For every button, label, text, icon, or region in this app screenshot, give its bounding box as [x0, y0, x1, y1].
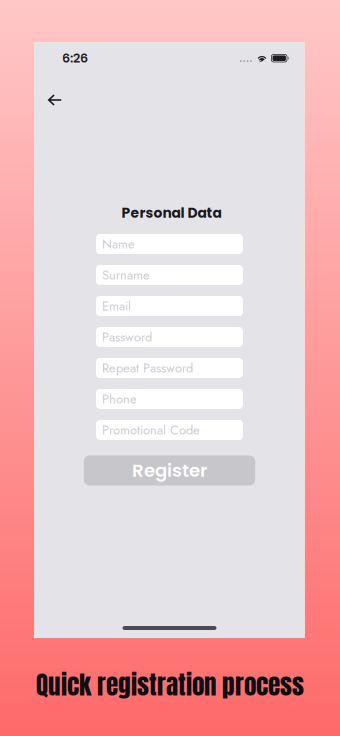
staticText: Email — [102, 297, 131, 315]
staticText: Promotional Code — [102, 421, 200, 439]
button[interactable]: Promotional Code — [96, 420, 243, 440]
staticText: Register — [132, 458, 207, 483]
button[interactable]: Register — [84, 455, 255, 485]
staticText: Password — [102, 328, 152, 346]
staticText: Personal Data — [121, 203, 221, 223]
button[interactable]: Repeat Password — [96, 358, 243, 378]
staticText: Name — [102, 235, 135, 253]
staticText: Surname — [102, 266, 150, 284]
button[interactable]: Surname — [96, 265, 243, 285]
button[interactable]: Password — [96, 327, 243, 347]
button[interactable]: Back — [39, 85, 71, 115]
button[interactable]: Email — [96, 296, 243, 316]
staticText: Phone — [102, 390, 137, 408]
staticText: Repeat Password — [102, 359, 193, 377]
staticText: 6:26 — [62, 49, 88, 67]
staticText: Quick registration process — [36, 666, 304, 704]
button[interactable]: Name — [96, 234, 243, 254]
button[interactable]: Phone — [96, 389, 243, 409]
